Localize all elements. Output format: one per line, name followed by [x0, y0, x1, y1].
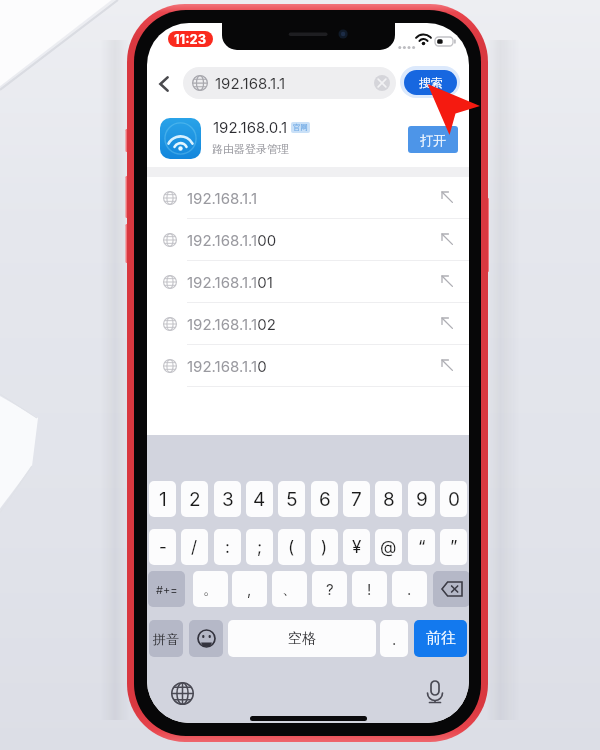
button[interactable]: 搜索 — [404, 70, 457, 95]
staticText: 官网 — [293, 123, 308, 132]
button[interactable]: ; — [246, 529, 273, 565]
button[interactable]: , — [232, 571, 267, 607]
staticText: 192.168.0.1 — [213, 118, 288, 136]
staticText: ¥ — [352, 537, 362, 558]
button[interactable]: #+= — [148, 571, 185, 607]
button[interactable]: 前往 — [414, 620, 467, 657]
staticText: 192.168.1.102 — [187, 315, 276, 333]
staticText: ! — [367, 580, 372, 598]
button[interactable]: 192.168.1.10 — [147, 345, 469, 387]
staticText: 搜索 — [419, 75, 443, 90]
button[interactable]: 6 — [311, 481, 338, 517]
button[interactable]: Back — [150, 70, 178, 98]
button[interactable]: 5 — [278, 481, 305, 517]
button[interactable]: Emoji keyboard — [189, 620, 223, 657]
staticText: 2 — [189, 488, 201, 511]
staticText: 6 — [319, 488, 331, 511]
staticText: ” — [450, 537, 458, 558]
button[interactable]: : — [214, 529, 241, 565]
button[interactable]: ! — [352, 571, 387, 607]
staticText: 、 — [282, 580, 297, 599]
staticText: 7 — [351, 488, 362, 511]
staticText: 9 — [416, 488, 428, 511]
button[interactable]: ( — [278, 529, 305, 565]
button[interactable]: ? — [312, 571, 347, 607]
button[interactable]: Backspace — [433, 571, 469, 607]
staticText: @ — [380, 537, 397, 558]
staticText: - — [159, 537, 167, 558]
staticText: 拼音 — [153, 631, 179, 647]
staticText: / — [191, 537, 198, 558]
button[interactable]: 7 — [343, 481, 370, 517]
staticText: 192.168.1.1 — [187, 189, 258, 207]
button[interactable]: 打开 — [408, 126, 458, 153]
button[interactable]: ) — [311, 529, 338, 565]
staticText: 192.168.1.101 — [187, 273, 273, 291]
button[interactable]: 3 — [214, 481, 241, 517]
button[interactable]: 。 — [193, 571, 228, 607]
button[interactable]: 8 — [375, 481, 402, 517]
staticText: 192.168.1.100 — [187, 231, 277, 249]
staticText: 空格 — [288, 630, 316, 648]
button[interactable]: 9 — [408, 481, 435, 517]
button[interactable]: 2 — [181, 481, 208, 517]
staticText: 。 — [203, 580, 218, 599]
button[interactable]: 192.168.1.100 — [147, 219, 469, 261]
button[interactable]: 、 — [272, 571, 307, 607]
staticText: . — [407, 580, 412, 598]
button[interactable]: Change keyboard — [166, 677, 198, 709]
button[interactable]: ” — [440, 529, 467, 565]
staticText: 192.168.1.1 — [215, 74, 286, 92]
button[interactable]: 0 — [440, 481, 467, 517]
staticText: 11:23 — [174, 31, 207, 47]
button[interactable]: 1 — [149, 481, 176, 517]
staticText: ( — [288, 537, 295, 558]
staticText: “ — [418, 537, 426, 558]
button[interactable]: Voice input — [419, 676, 451, 708]
staticText: ? — [326, 580, 334, 598]
staticText: 5 — [286, 488, 298, 511]
staticText: , — [247, 580, 252, 598]
staticText: 3 — [222, 488, 234, 511]
button[interactable]: 空格 — [228, 620, 376, 657]
button[interactable]: / — [181, 529, 208, 565]
staticText: 4 — [253, 488, 266, 511]
staticText: . — [392, 630, 397, 648]
staticText: : — [225, 537, 230, 558]
button[interactable]: 192.168.1.101 — [147, 261, 469, 303]
button[interactable]: 192.168.0.1 — [147, 106, 469, 167]
staticText: 路由器登录管理 — [212, 142, 289, 156]
staticText: 192.168.1.10 — [187, 357, 267, 375]
staticText: 0 — [448, 488, 460, 511]
button[interactable]: 192.168.1.1 — [183, 67, 396, 99]
button[interactable]: . — [392, 571, 427, 607]
staticText: ; — [257, 537, 263, 558]
staticText: 1 — [159, 488, 167, 511]
staticText: ) — [321, 537, 328, 558]
button[interactable]: 192.168.1.1 — [147, 177, 469, 219]
button[interactable]: 4 — [246, 481, 273, 517]
button[interactable]: 拼音 — [149, 620, 183, 657]
staticText: 打开 — [420, 132, 446, 148]
staticText: #+= — [156, 583, 178, 596]
button[interactable]: ¥ — [343, 529, 370, 565]
button[interactable]: Clear text — [374, 75, 390, 91]
staticText: 8 — [383, 488, 395, 511]
button[interactable]: 192.168.1.102 — [147, 303, 469, 345]
button[interactable]: @ — [375, 529, 402, 565]
button[interactable]: “ — [408, 529, 435, 565]
staticText: 前往 — [426, 629, 456, 648]
button[interactable]: . — [380, 620, 408, 657]
button[interactable]: - — [149, 529, 176, 565]
